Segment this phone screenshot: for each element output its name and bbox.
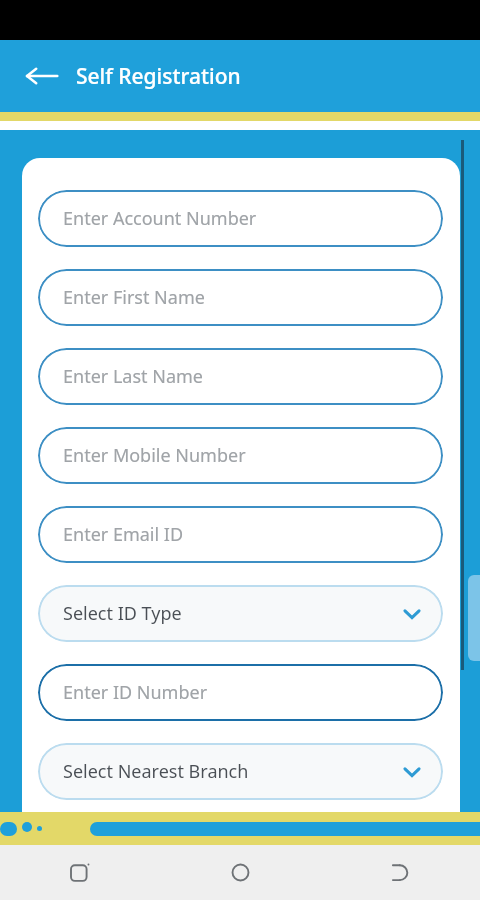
button[interactable]: Enter Last Name [38,348,443,405]
button[interactable]: Enter ID Number [38,664,443,721]
button[interactable]: Recents [0,845,160,900]
staticText: Enter Account Number [63,206,423,231]
button[interactable]: Enter Email ID [38,506,443,563]
button[interactable]: Select ID Type [38,585,443,642]
button[interactable]: Select Nearest Branch [38,743,443,800]
staticText: Enter First Name [63,285,423,310]
staticText: Select Nearest Branch [63,759,401,784]
staticText: Enter Mobile Number [63,443,423,468]
button[interactable]: Back [20,54,64,98]
button[interactable]: Enter First Name [38,269,443,326]
staticText: Enter ID Number [63,680,423,705]
staticText: Select ID Type [63,601,401,626]
button[interactable]: Back [320,845,480,900]
button[interactable]: Home [160,845,320,900]
staticText: Self Registration [76,62,241,91]
button[interactable]: Enter Mobile Number [38,427,443,484]
staticText: Enter Last Name [63,364,423,389]
staticText: Enter Email ID [63,522,423,547]
button[interactable]: Enter Account Number [38,190,443,247]
